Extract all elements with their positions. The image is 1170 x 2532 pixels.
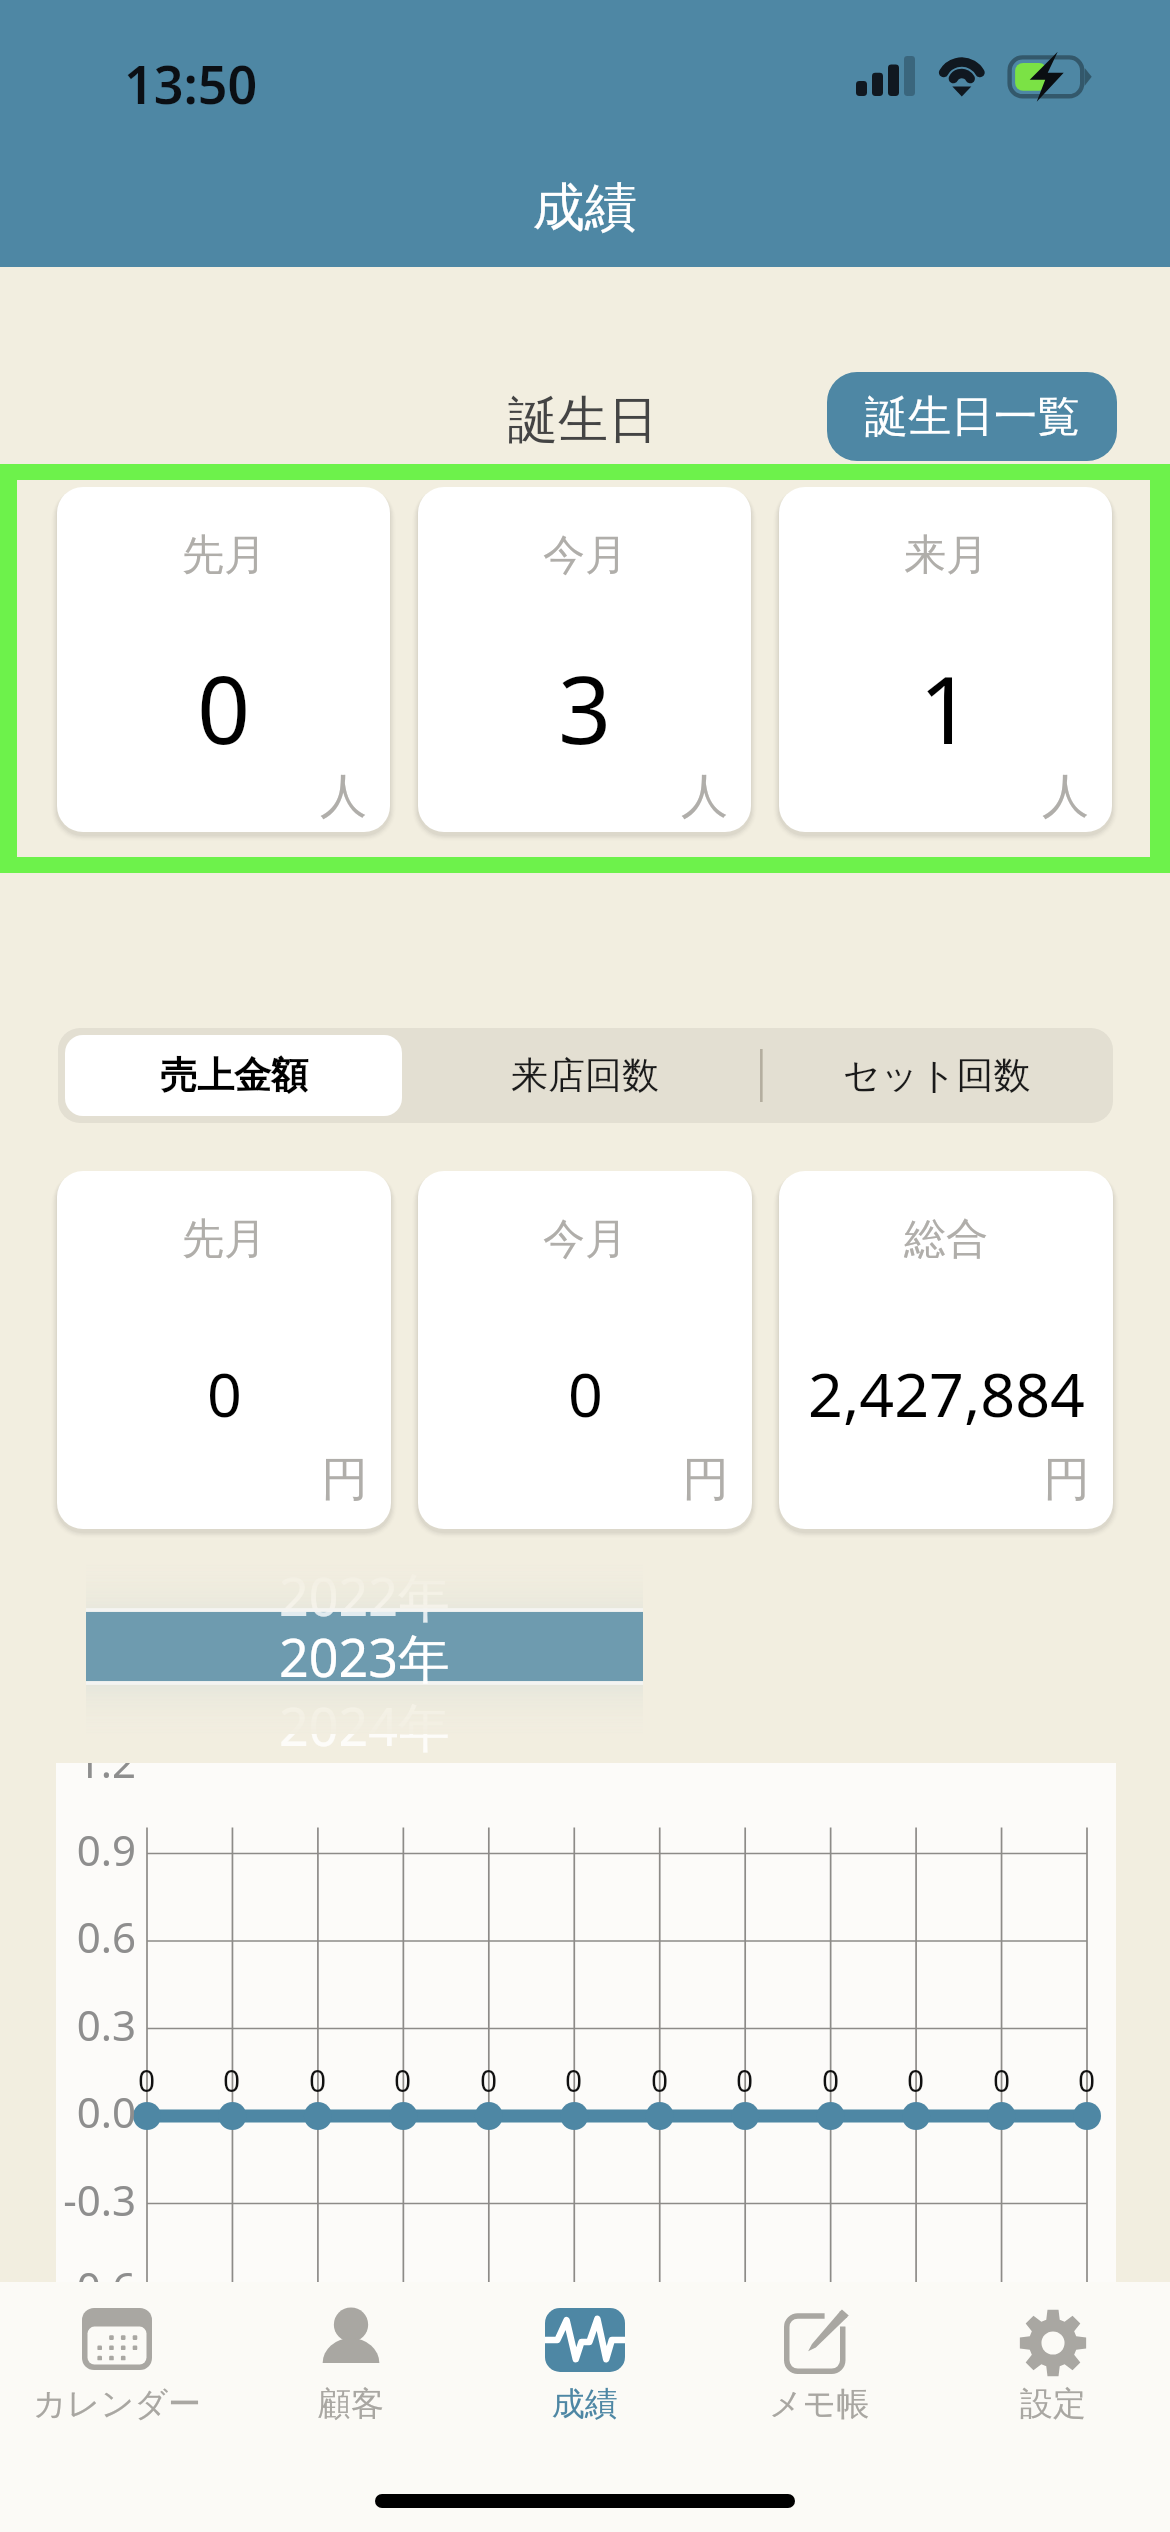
other: Memo bbox=[784, 2308, 854, 2374]
button[interactable]: Year picker bbox=[86, 1564, 643, 1734]
staticText: 0 bbox=[993, 2060, 1011, 2101]
staticText: 0 bbox=[907, 2060, 925, 2101]
button[interactable]: セット回数 bbox=[761, 1028, 1113, 1123]
staticText: カレンダー bbox=[33, 2383, 202, 2425]
staticText: 誕生日一覧 bbox=[865, 390, 1080, 444]
staticText: 来店回数 bbox=[511, 1052, 659, 1099]
staticText: 人 bbox=[681, 767, 728, 826]
button[interactable]: Performance bbox=[468, 2282, 702, 2532]
staticText: 0 bbox=[822, 2060, 840, 2101]
staticText: 0 bbox=[480, 2060, 498, 2101]
button[interactable]: 先月 bbox=[57, 487, 390, 832]
staticText: 2024年 bbox=[279, 1690, 450, 1761]
staticText: 0 bbox=[1078, 2060, 1096, 2101]
staticText: 顧客 bbox=[318, 2383, 384, 2425]
staticText: 0.9 bbox=[56, 1821, 136, 1878]
staticText: 成績 bbox=[552, 2383, 618, 2425]
button[interactable]: 総合 bbox=[779, 1171, 1113, 1529]
other: Customers bbox=[318, 2308, 384, 2372]
staticText: 0 bbox=[651, 2060, 669, 2101]
staticText: 誕生日 bbox=[508, 389, 658, 452]
staticText: セット回数 bbox=[843, 1052, 1031, 1099]
button[interactable]: Calendar bbox=[0, 2282, 234, 2532]
staticText: 1 bbox=[919, 645, 973, 772]
button[interactable]: Settings bbox=[936, 2282, 1170, 2532]
button[interactable]: 売上金額 bbox=[65, 1035, 402, 1116]
staticText: 0 bbox=[394, 2060, 412, 2101]
staticText: 円 bbox=[1043, 1450, 1090, 1509]
staticText: 3 bbox=[558, 645, 612, 772]
staticText: -0.6 bbox=[56, 2258, 136, 2282]
staticText: 0 bbox=[309, 2060, 327, 2101]
staticText: 0 bbox=[138, 2060, 156, 2101]
button[interactable]: 先月 bbox=[57, 1171, 391, 1529]
staticText: 0.6 bbox=[56, 1908, 136, 1965]
button[interactable]: 来月 bbox=[779, 487, 1112, 832]
staticText: 今月 bbox=[543, 1213, 627, 1266]
staticText: 13:50 bbox=[124, 48, 258, 119]
staticText: 0 bbox=[565, 2060, 583, 2101]
staticText: 2022年 bbox=[279, 1560, 450, 1631]
staticText: 円 bbox=[682, 1450, 729, 1509]
staticText: 人 bbox=[1042, 767, 1089, 826]
staticText: 0 bbox=[223, 2060, 241, 2101]
staticText: 0.3 bbox=[56, 1996, 136, 2053]
staticText: 設定 bbox=[1020, 2383, 1086, 2425]
button[interactable]: Customers bbox=[234, 2282, 468, 2532]
button[interactable]: Memo bbox=[702, 2282, 936, 2532]
staticText: 先月 bbox=[182, 529, 266, 582]
button[interactable]: 来店回数 bbox=[409, 1028, 761, 1123]
staticText: 0 bbox=[736, 2060, 754, 2101]
staticText: 0 bbox=[207, 1352, 242, 1435]
staticText: 0 bbox=[568, 1352, 603, 1435]
staticText: 0.0 bbox=[56, 2083, 136, 2140]
staticText: 0 bbox=[197, 645, 251, 772]
staticText: 2023年 bbox=[279, 1621, 450, 1692]
other: Performance bbox=[545, 2308, 625, 2372]
button[interactable]: 今月 bbox=[418, 1171, 752, 1529]
button[interactable]: 誕生日一覧 bbox=[827, 372, 1117, 461]
button[interactable]: 今月 bbox=[418, 487, 751, 832]
staticText: 人 bbox=[320, 767, 367, 826]
staticText: 円 bbox=[321, 1450, 368, 1509]
staticText: 1.2 bbox=[56, 1763, 136, 1790]
staticText: 売上金額 bbox=[160, 1052, 308, 1099]
staticText: 来月 bbox=[904, 529, 988, 582]
staticText: 先月 bbox=[182, 1213, 266, 1266]
staticText: -0.3 bbox=[56, 2171, 136, 2228]
other: Settings bbox=[1018, 2308, 1088, 2378]
staticText: 2,427,884 bbox=[808, 1352, 1085, 1435]
staticText: 成績 bbox=[0, 175, 1170, 241]
staticText: 総合 bbox=[904, 1213, 988, 1266]
other: Calendar bbox=[82, 2308, 152, 2370]
staticText: メモ帳 bbox=[769, 2383, 870, 2425]
staticText: 今月 bbox=[543, 529, 627, 582]
